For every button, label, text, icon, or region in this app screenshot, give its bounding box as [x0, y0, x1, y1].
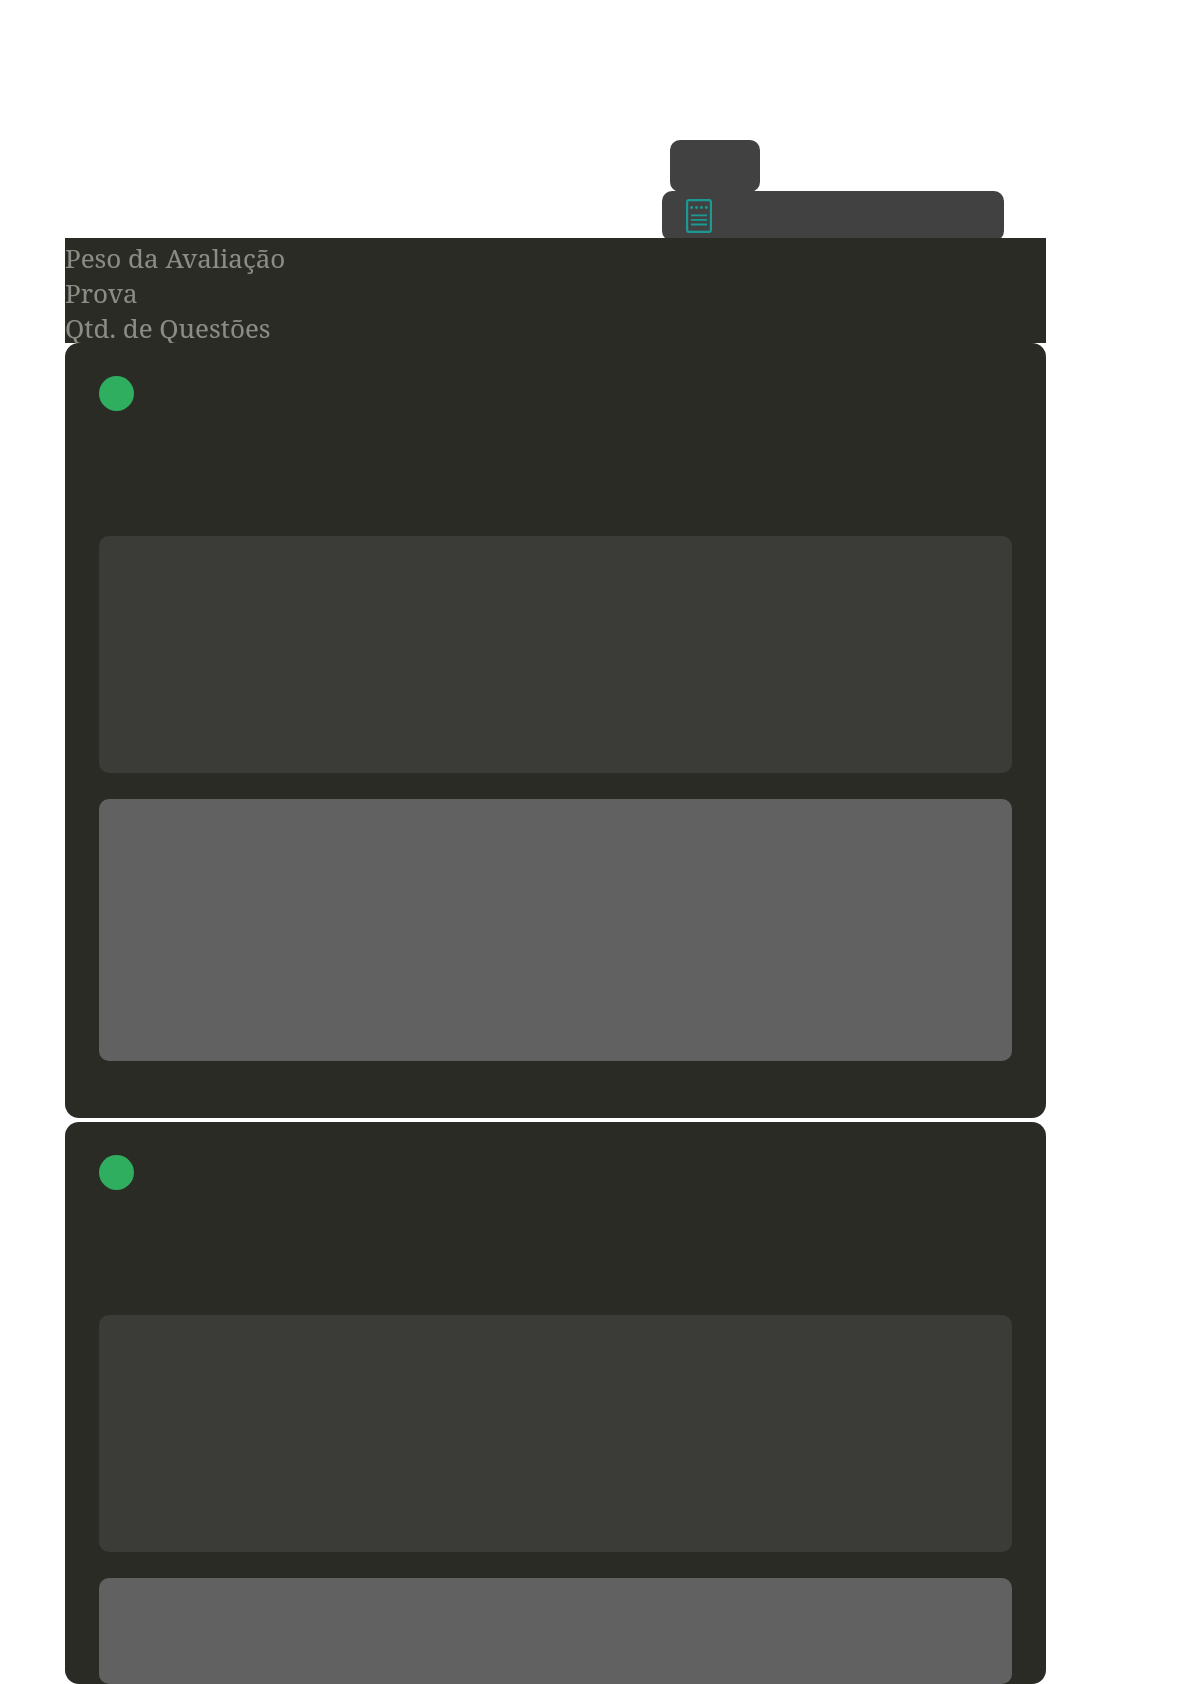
button[interactable]: Nova avaliacao	[662, 191, 1004, 241]
staticText: Qtd. de Questões	[65, 310, 271, 345]
button[interactable]	[65, 343, 1046, 1118]
staticText: Prova	[65, 275, 138, 310]
button[interactable]	[65, 1122, 1046, 1684]
button[interactable]: Menu	[670, 140, 760, 192]
staticText: Peso da Avaliação	[65, 240, 286, 275]
